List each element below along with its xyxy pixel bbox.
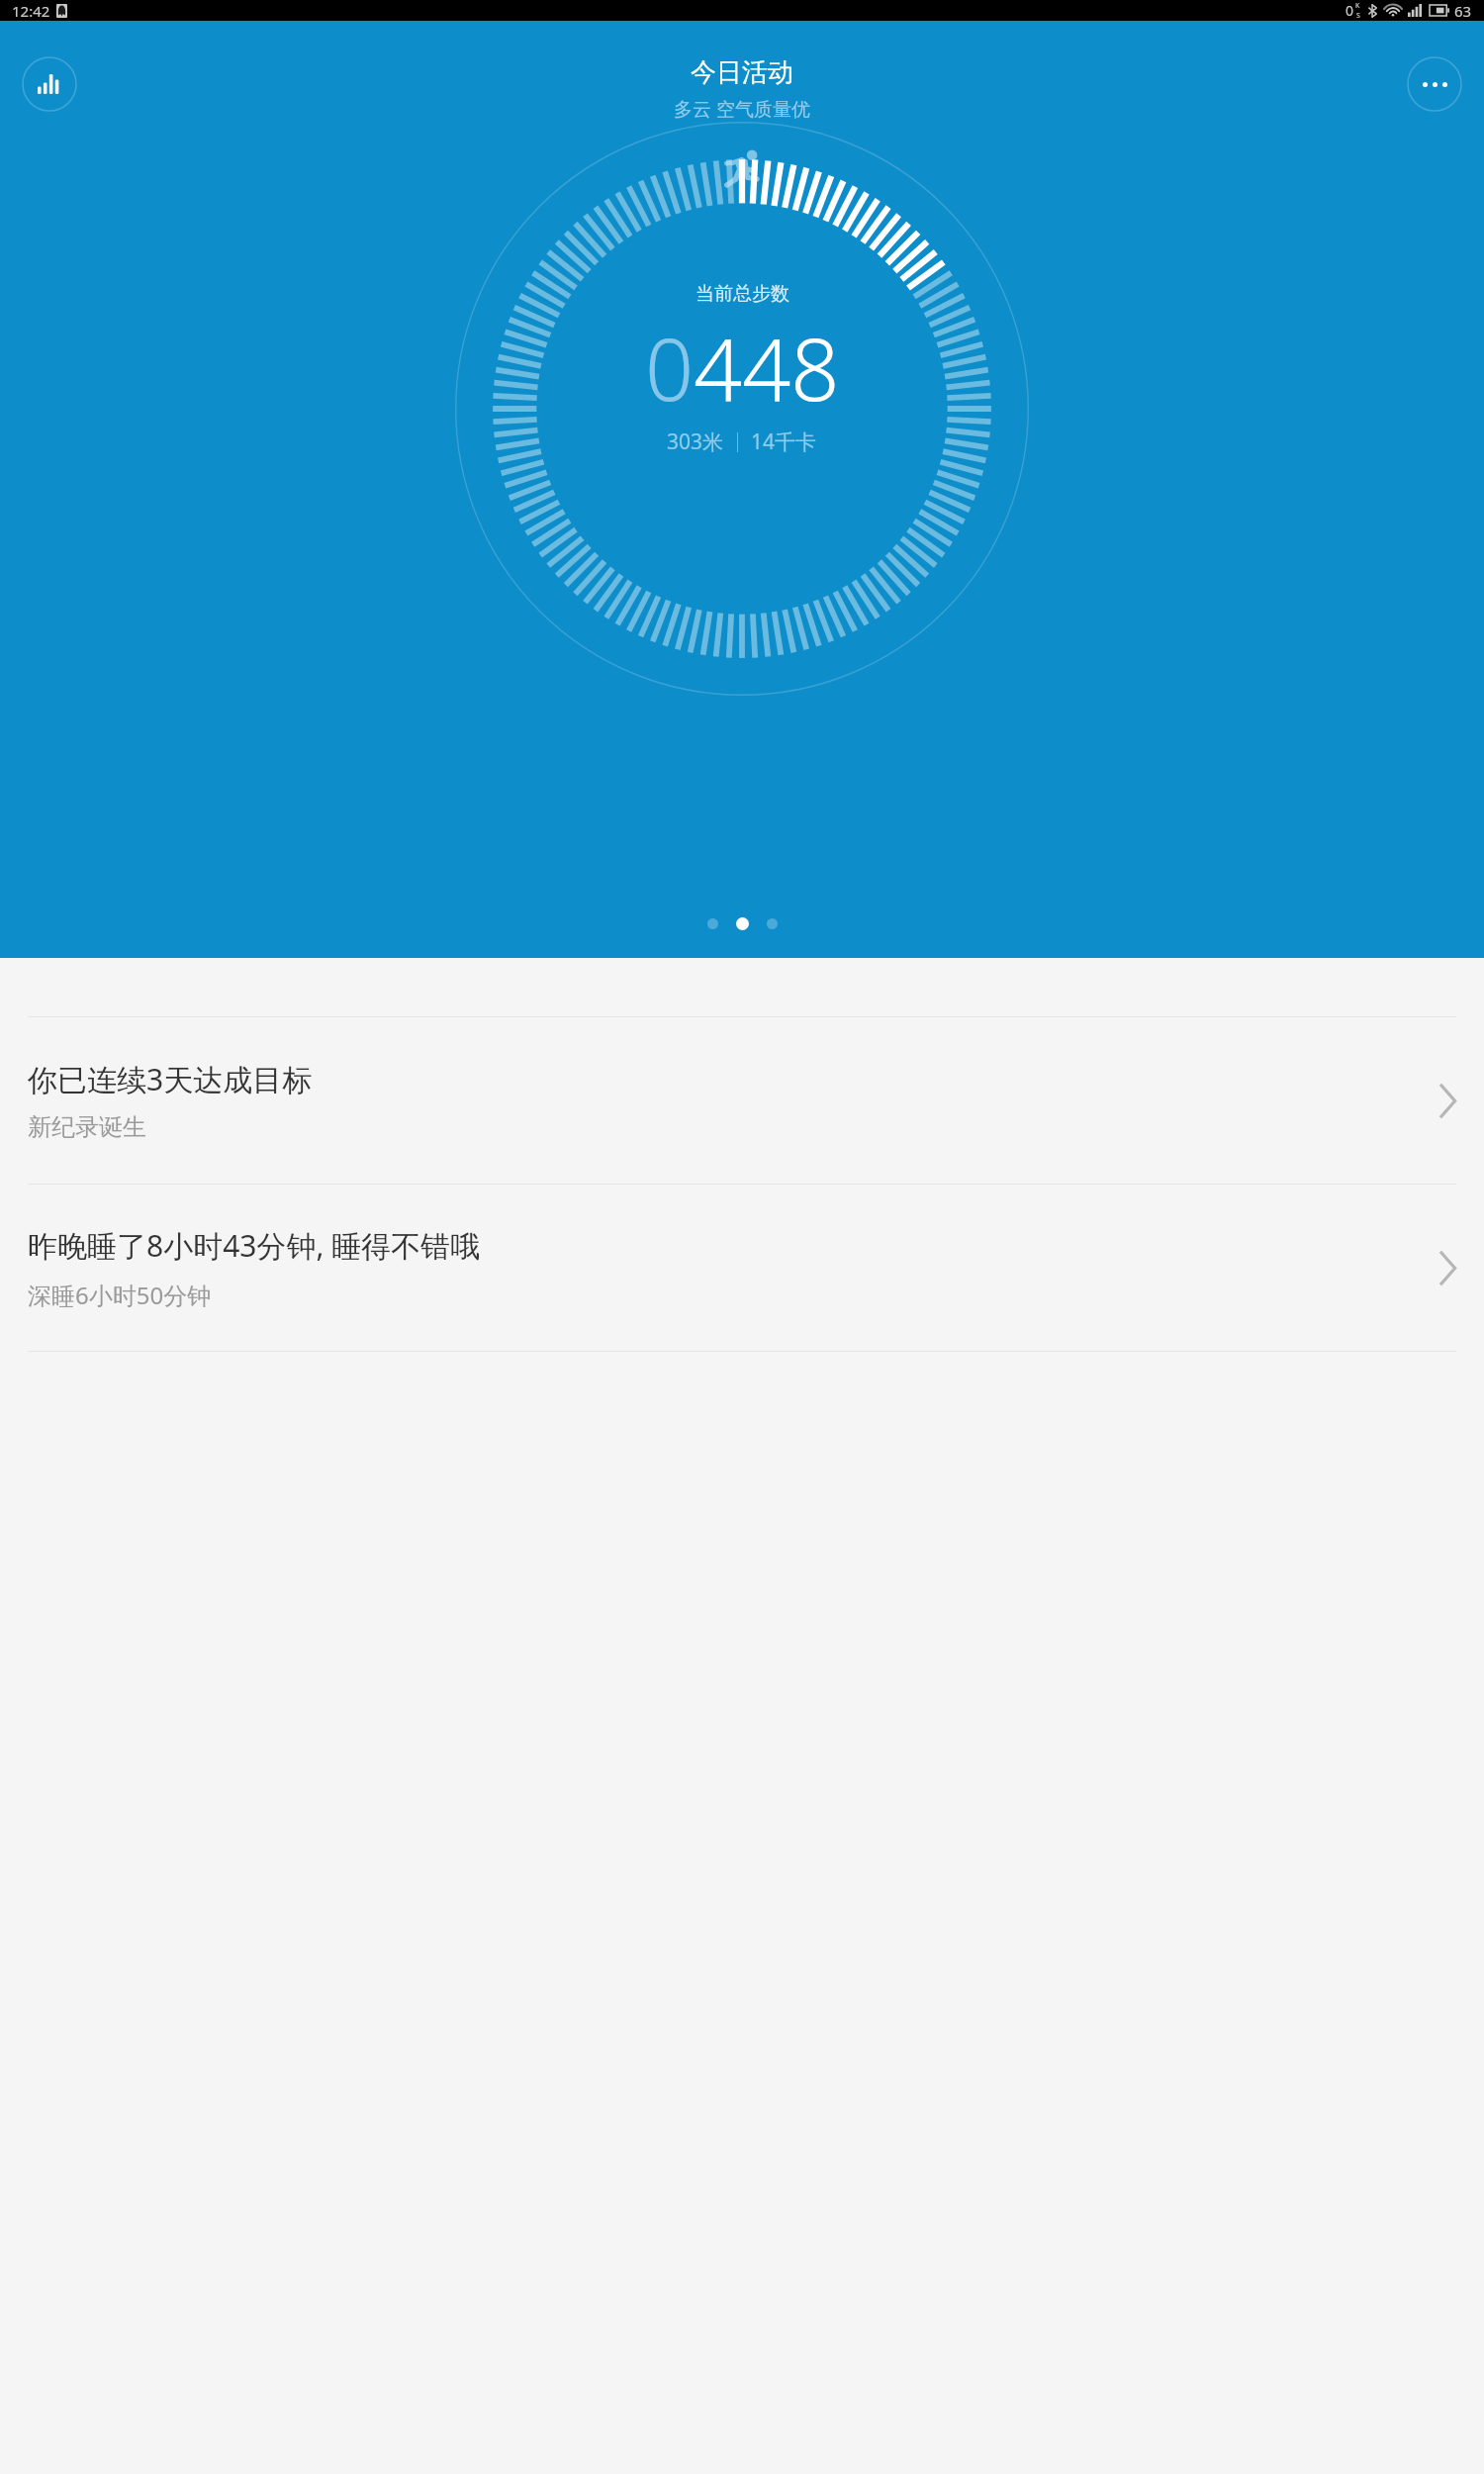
staticText: 新纪录诞生 [28, 1112, 146, 1142]
staticText: 今日活动 [691, 56, 793, 89]
staticText: 63 [1454, 1, 1472, 21]
staticText: 0448 [645, 310, 840, 426]
staticText: 14千卡 [751, 428, 817, 456]
staticText: K [1355, 1, 1360, 11]
button[interactable]: Statistics [22, 56, 77, 112]
button[interactable]: 昨晚睡了8小时43分钟, 睡得不错哦 [0, 1185, 1484, 1351]
staticText: 昨晚睡了8小时43分钟, 睡得不错哦 [28, 1225, 481, 1266]
staticText: 303米 [667, 428, 724, 456]
button[interactable]: 你已连续3天达成目标 [0, 1017, 1484, 1184]
staticText: 12:42 [12, 1, 50, 21]
button[interactable]: More options [1407, 56, 1462, 112]
staticText: S [1356, 11, 1360, 21]
staticText: 多云 空气质量优 [674, 96, 810, 122]
staticText: 你已连续3天达成目标 [28, 1059, 313, 1099]
staticText: 深睡6小时50分钟 [28, 1279, 212, 1311]
staticText: 当前总步数 [696, 282, 789, 306]
staticText: 0 [1345, 1, 1354, 20]
